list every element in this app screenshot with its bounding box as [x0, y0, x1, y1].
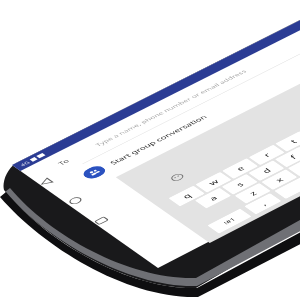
staticText: Type a name, phone number or email addre…: [280, 112, 300, 153]
staticText: Start group conversation: [252, 256, 300, 300]
button[interactable]: Back: [0, 158, 62, 234]
button[interactable]: Start group conversation: [140, 230, 300, 300]
staticText: To: [120, 110, 158, 156]
